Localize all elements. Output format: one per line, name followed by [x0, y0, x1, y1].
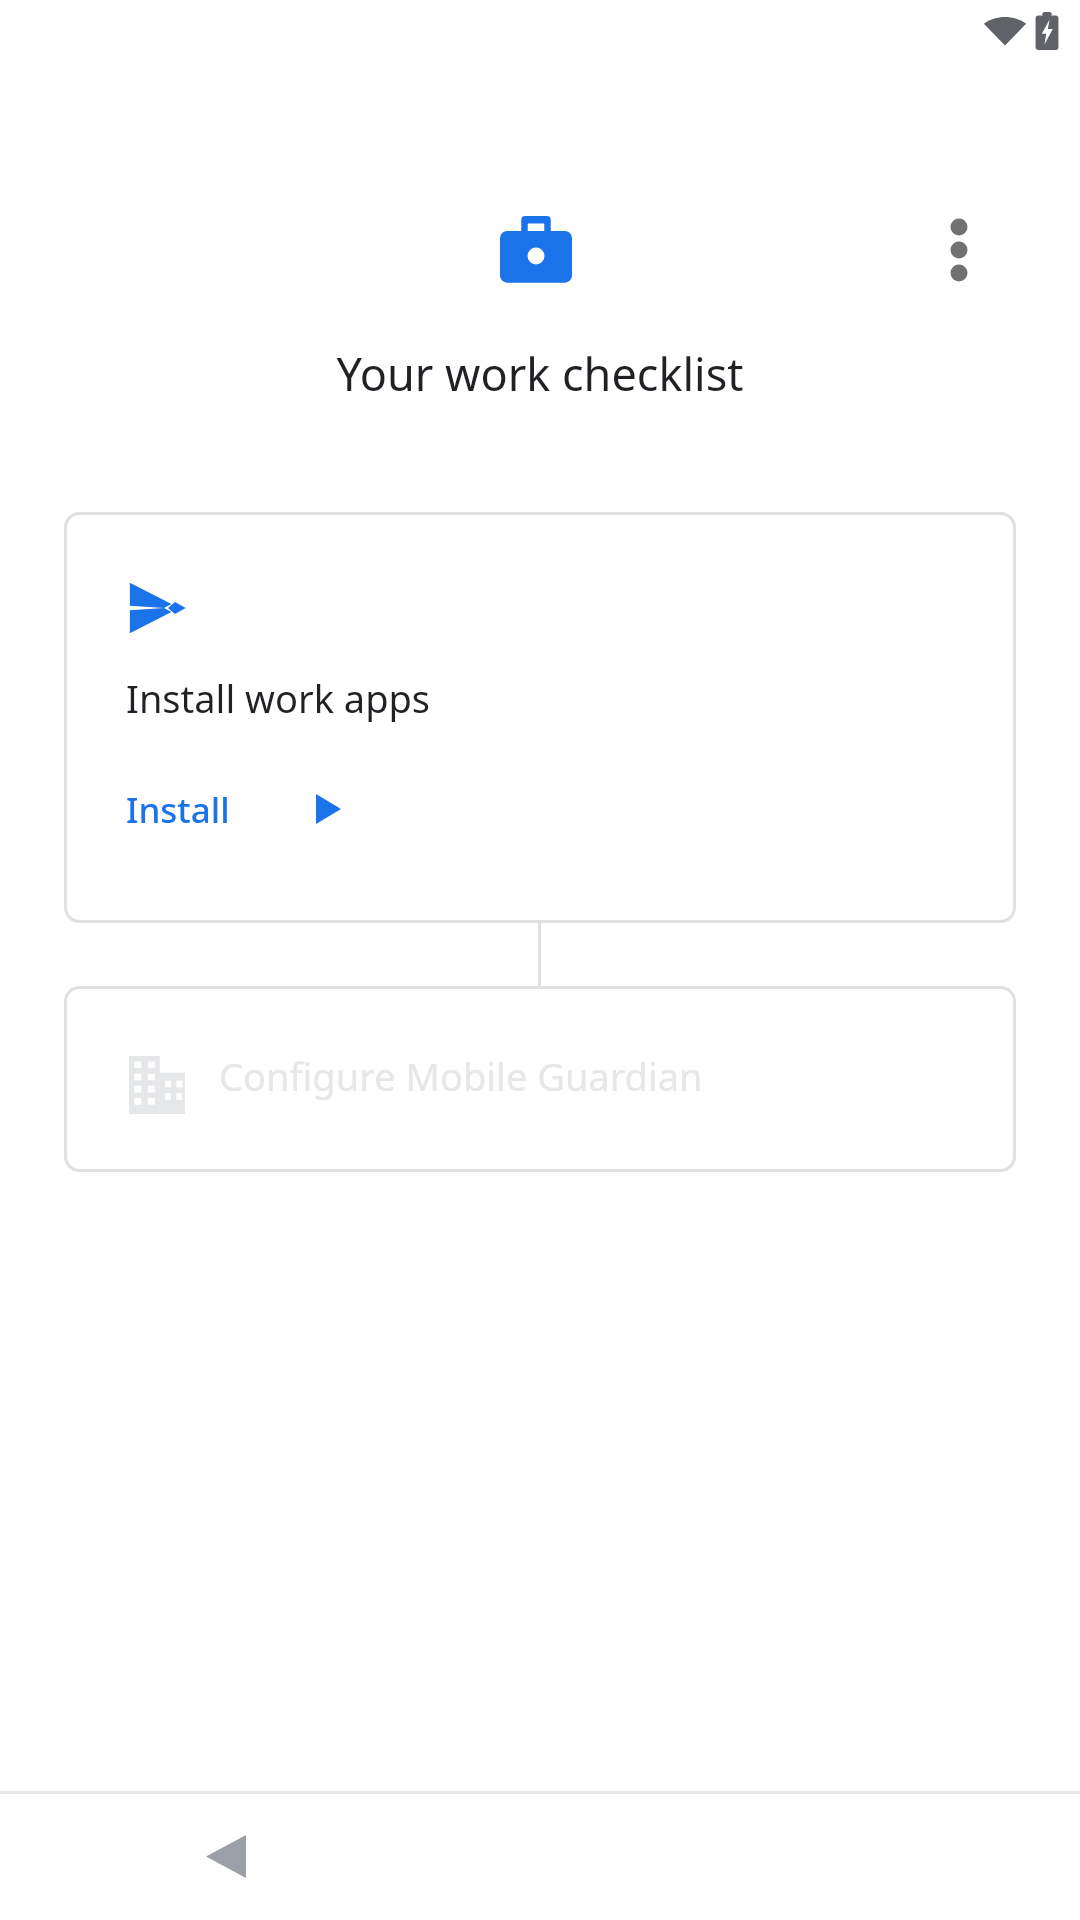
staticText: Configure Mobile Guardian — [219, 1050, 703, 1102]
staticText: Install work apps — [126, 672, 431, 724]
button[interactable]: Install work apps — [64, 512, 1016, 923]
staticText: Your work checklist — [0, 343, 1080, 404]
staticText: Install — [126, 786, 230, 834]
button[interactable]: Back — [158, 1796, 294, 1920]
button[interactable]: More options — [911, 202, 1007, 298]
button[interactable]: Install — [120, 780, 350, 842]
